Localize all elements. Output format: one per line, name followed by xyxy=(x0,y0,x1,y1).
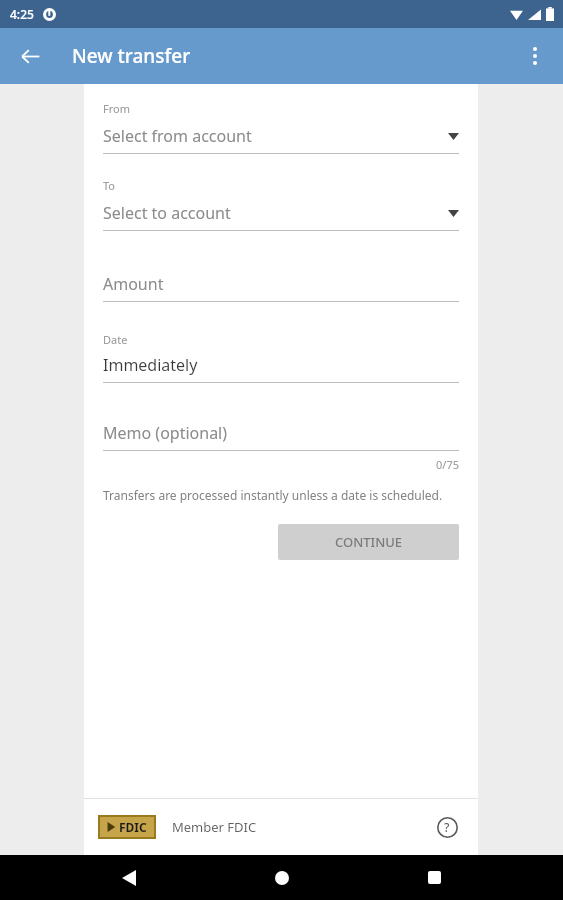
staticText: FDIC xyxy=(119,819,147,835)
button[interactable]: Home xyxy=(259,855,305,900)
staticText: Immediately xyxy=(103,354,198,376)
staticText: From xyxy=(103,101,130,116)
button[interactable]: Back xyxy=(106,855,152,900)
button[interactable]: To xyxy=(103,178,459,231)
button[interactable]: Memo (optional) xyxy=(103,422,459,451)
staticText: ? xyxy=(444,819,450,835)
staticText: Transfers are processed instantly unless… xyxy=(103,487,443,503)
staticText: Date xyxy=(103,332,128,347)
button[interactable]: More options xyxy=(513,34,557,78)
button[interactable]: Recents xyxy=(411,855,457,900)
staticText: 4:25 xyxy=(10,6,34,22)
button[interactable]: From xyxy=(103,101,459,154)
staticText: 0/75 xyxy=(103,457,459,472)
staticText: Amount xyxy=(103,273,164,295)
staticText: Select from account xyxy=(103,125,448,147)
staticText: Memo (optional) xyxy=(103,422,228,444)
staticText: Select to account xyxy=(103,202,448,224)
button[interactable]: Amount xyxy=(103,273,459,302)
button[interactable]: CONTINUE xyxy=(278,524,459,560)
staticText: Member FDIC xyxy=(172,818,257,836)
staticText: New transfer xyxy=(72,43,191,69)
staticText: CONTINUE xyxy=(335,533,403,551)
button[interactable]: Back xyxy=(8,34,52,78)
button[interactable]: Help xyxy=(430,810,464,844)
button[interactable]: Date xyxy=(103,332,459,383)
staticText: To xyxy=(103,178,116,193)
